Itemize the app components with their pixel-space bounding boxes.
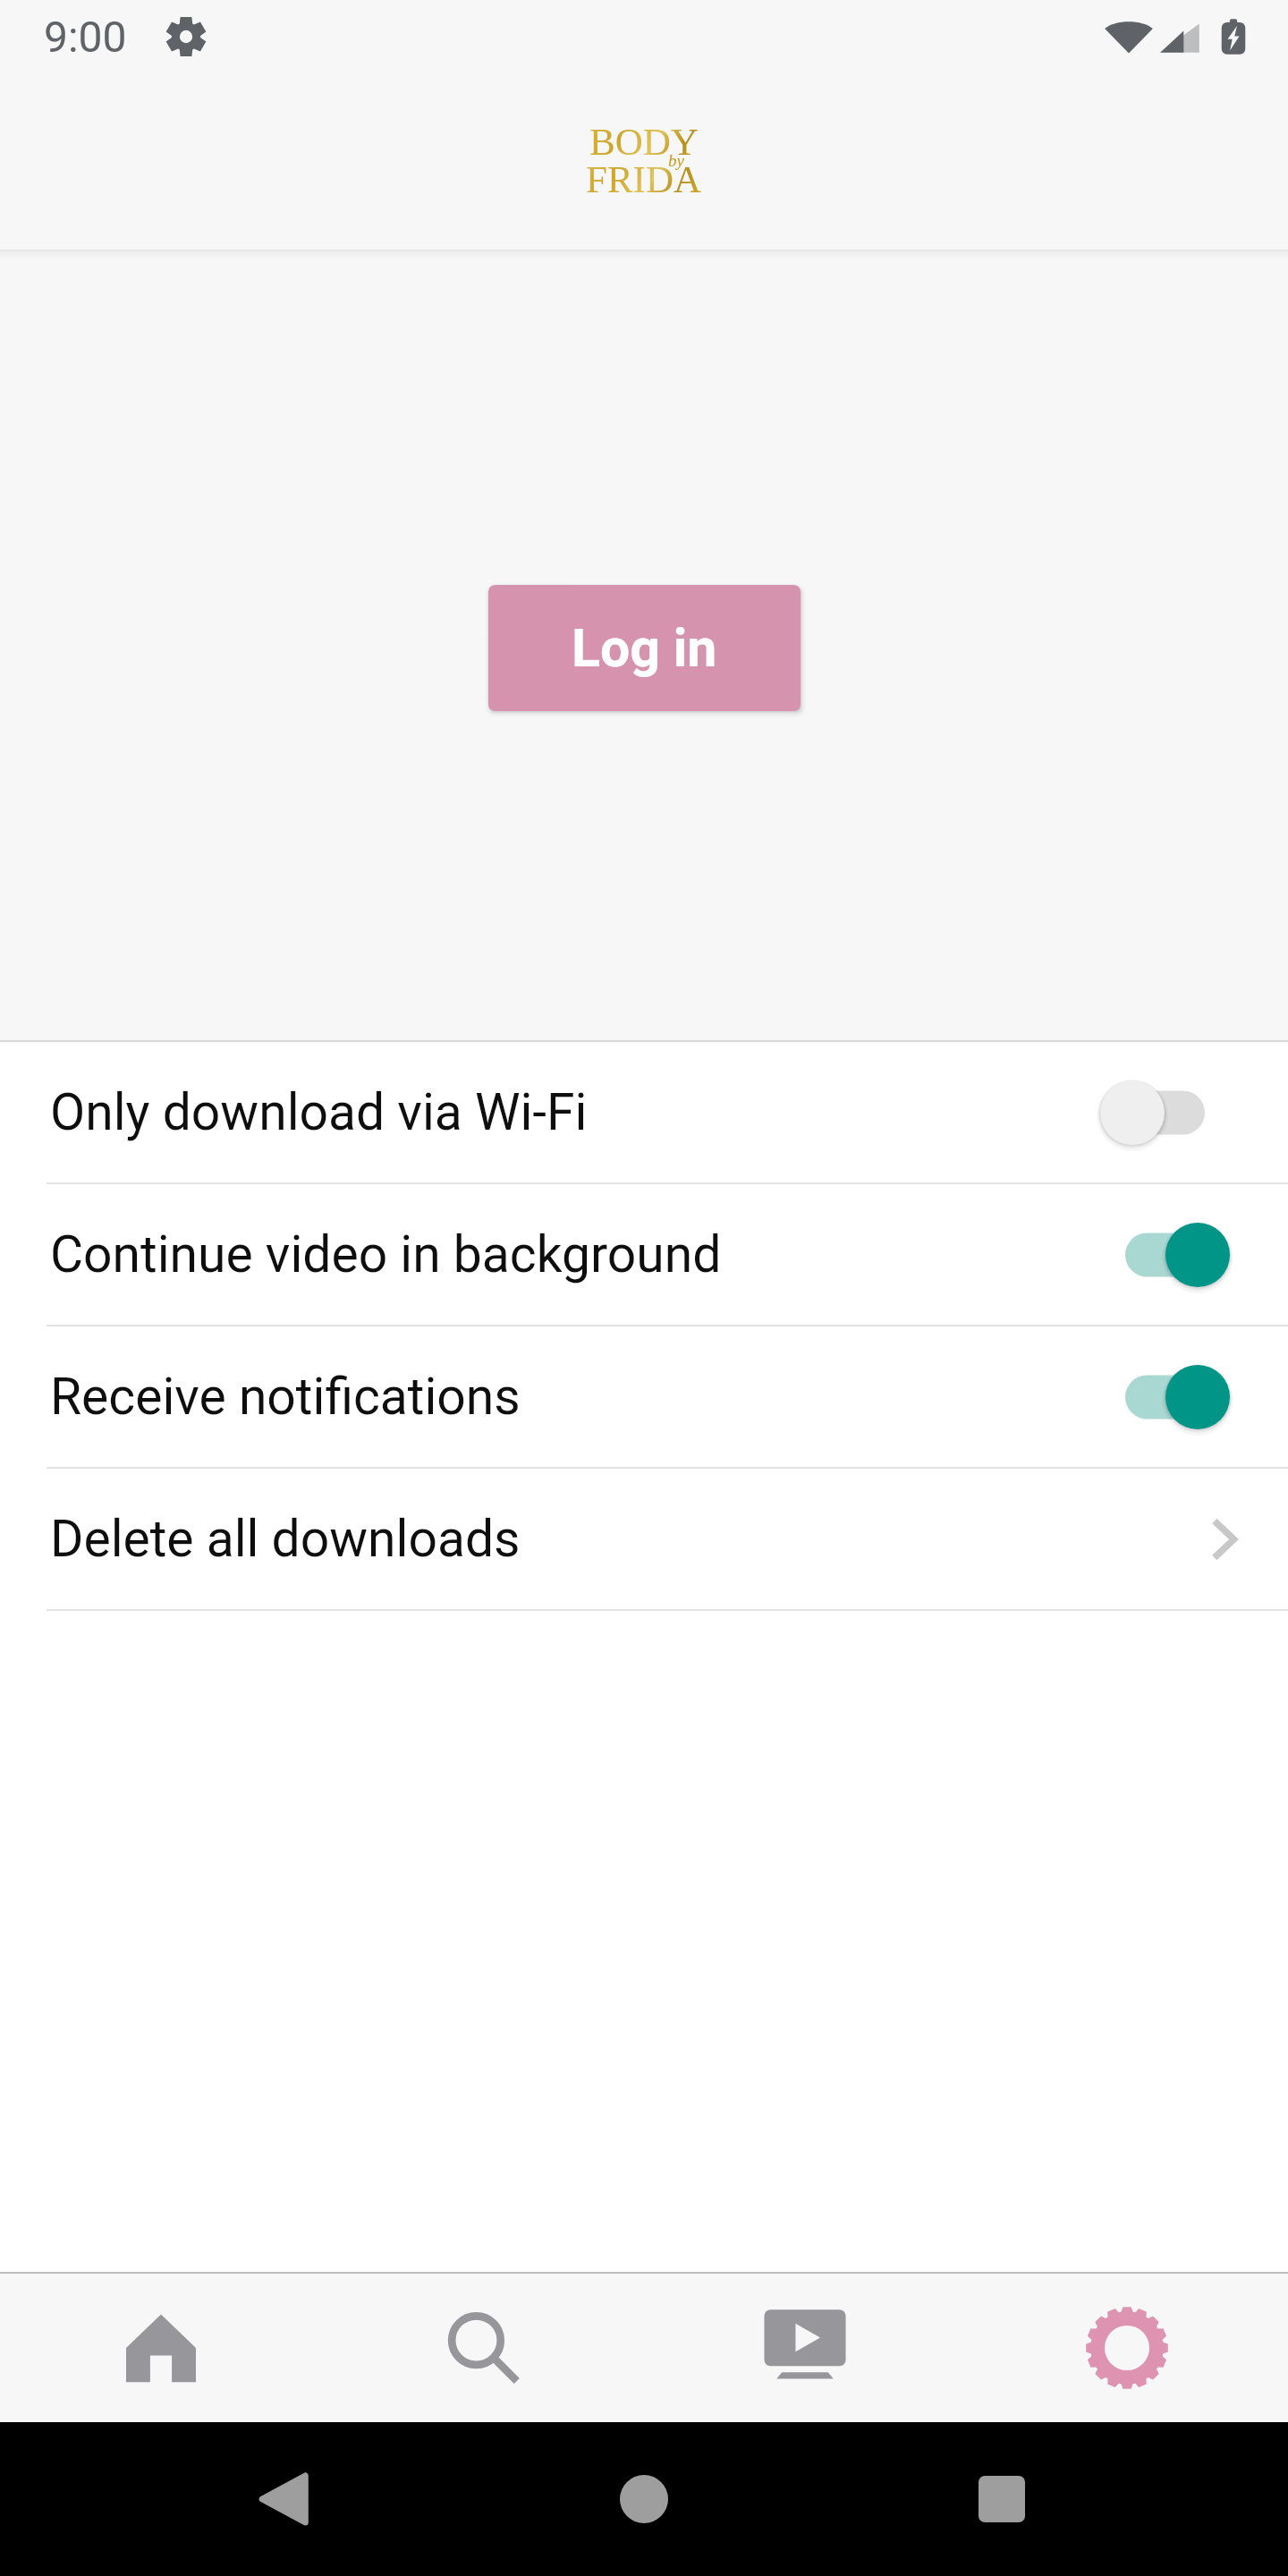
button[interactable]: Only download via Wi-Fi [0, 1042, 1288, 1184]
button[interactable]: Home [465, 2422, 823, 2576]
button[interactable]: Log in [488, 585, 801, 711]
button[interactable]: Settings [966, 2274, 1288, 2422]
button[interactable]: Delete all downloads [0, 1469, 1288, 1611]
staticText: Delete all downloads [50, 1509, 521, 1569]
button[interactable]: Home [0, 2274, 322, 2422]
button[interactable]: Search [322, 2274, 644, 2422]
staticText: Log in [572, 617, 717, 679]
button[interactable]: Continue video in background [0, 1184, 1288, 1326]
staticText: BODY [589, 121, 699, 164]
staticText: Receive notifications [50, 1367, 521, 1427]
staticText: FRIDA [586, 158, 702, 201]
staticText: Only download via Wi-Fi [50, 1082, 588, 1142]
staticText: by [668, 151, 684, 170]
staticText: Continue video in background [50, 1224, 722, 1284]
button[interactable]: Videos [644, 2274, 966, 2422]
button[interactable]: Back [107, 2422, 465, 2576]
staticText: 9:00 [44, 12, 127, 62]
button[interactable]: Recents [823, 2422, 1181, 2576]
button[interactable]: Receive notifications [0, 1326, 1288, 1469]
